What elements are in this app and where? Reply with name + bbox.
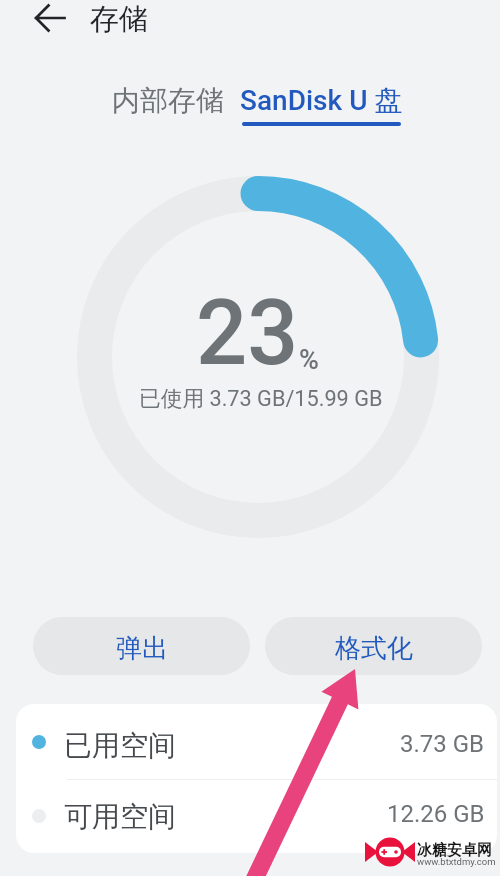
button[interactable]: 已用空间 — [16, 704, 497, 779]
staticText: 内部存储 — [112, 83, 224, 118]
button[interactable]: 格式化 — [265, 617, 482, 675]
staticText: 可用空间 — [64, 799, 176, 834]
staticText: www.btxtdmy.com — [417, 856, 496, 867]
staticText: % — [299, 344, 319, 376]
staticText: SanDisk U 盘 — [240, 83, 403, 118]
staticText: 23 — [196, 281, 299, 386]
button[interactable]: SanDisk U 盘 — [232, 77, 411, 128]
staticText: 冰糖安卓网 — [417, 841, 492, 860]
staticText: 12.26 GB — [387, 800, 485, 828]
staticText: 存储 — [90, 1, 148, 38]
button[interactable]: 弹出 — [33, 617, 250, 675]
button[interactable]: Back — [22, 0, 78, 46]
staticText: 弹出 — [116, 632, 168, 665]
staticText: 已用空间 — [64, 728, 176, 763]
button[interactable]: 可用空间 — [16, 779, 497, 853]
staticText: 3.73 GB — [400, 730, 485, 758]
staticText: 格式化 — [335, 632, 413, 665]
staticText: 已使用 3.73 GB/15.99 GB — [139, 385, 383, 412]
button[interactable]: 内部存储 — [98, 77, 238, 124]
